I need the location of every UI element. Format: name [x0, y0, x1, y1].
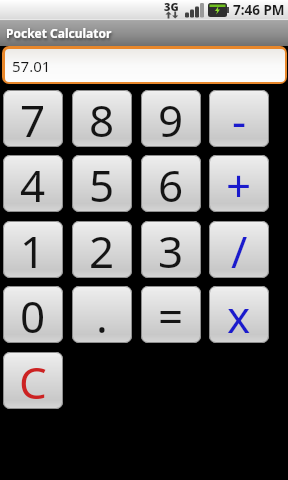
staticText: 1 — [20, 221, 46, 278]
button[interactable]: C — [3, 352, 63, 409]
staticText: - — [232, 90, 247, 147]
button[interactable]: / — [209, 221, 269, 278]
staticText: 7 — [20, 90, 46, 147]
button[interactable]: x — [209, 286, 269, 343]
staticText: 5 — [89, 155, 115, 212]
staticText: 2 — [89, 221, 115, 278]
button[interactable]: 57.01 — [2, 46, 287, 84]
staticText: 6 — [158, 155, 184, 212]
staticText: 8 — [89, 90, 115, 147]
staticText: x — [227, 286, 251, 343]
staticText: / — [231, 221, 248, 278]
staticText: C — [19, 352, 47, 409]
button[interactable]: . — [72, 286, 132, 343]
button[interactable]: 0 — [3, 286, 63, 343]
staticText: Pocket Calculator — [6, 25, 112, 41]
button[interactable]: 7 — [3, 90, 63, 147]
staticText: 4 — [20, 155, 46, 212]
button[interactable]: 6 — [141, 155, 201, 212]
staticText: 3G — [164, 0, 179, 14]
staticText: = — [158, 286, 184, 343]
staticText: 3 — [158, 221, 184, 278]
staticText: 7:46 PM — [233, 1, 285, 19]
button[interactable]: = — [141, 286, 201, 343]
button[interactable]: 1 — [3, 221, 63, 278]
staticText: + — [226, 155, 252, 212]
button[interactable]: 3 — [141, 221, 201, 278]
button[interactable]: 2 — [72, 221, 132, 278]
staticText: . — [96, 286, 108, 343]
button[interactable]: 5 — [72, 155, 132, 212]
button[interactable]: - — [209, 90, 269, 147]
staticText: 9 — [158, 90, 184, 147]
button[interactable]: + — [209, 155, 269, 212]
button[interactable]: 9 — [141, 90, 201, 147]
staticText: 0 — [20, 286, 46, 343]
button[interactable]: 8 — [72, 90, 132, 147]
button[interactable]: 4 — [3, 155, 63, 212]
staticText: 57.01 — [12, 56, 51, 76]
